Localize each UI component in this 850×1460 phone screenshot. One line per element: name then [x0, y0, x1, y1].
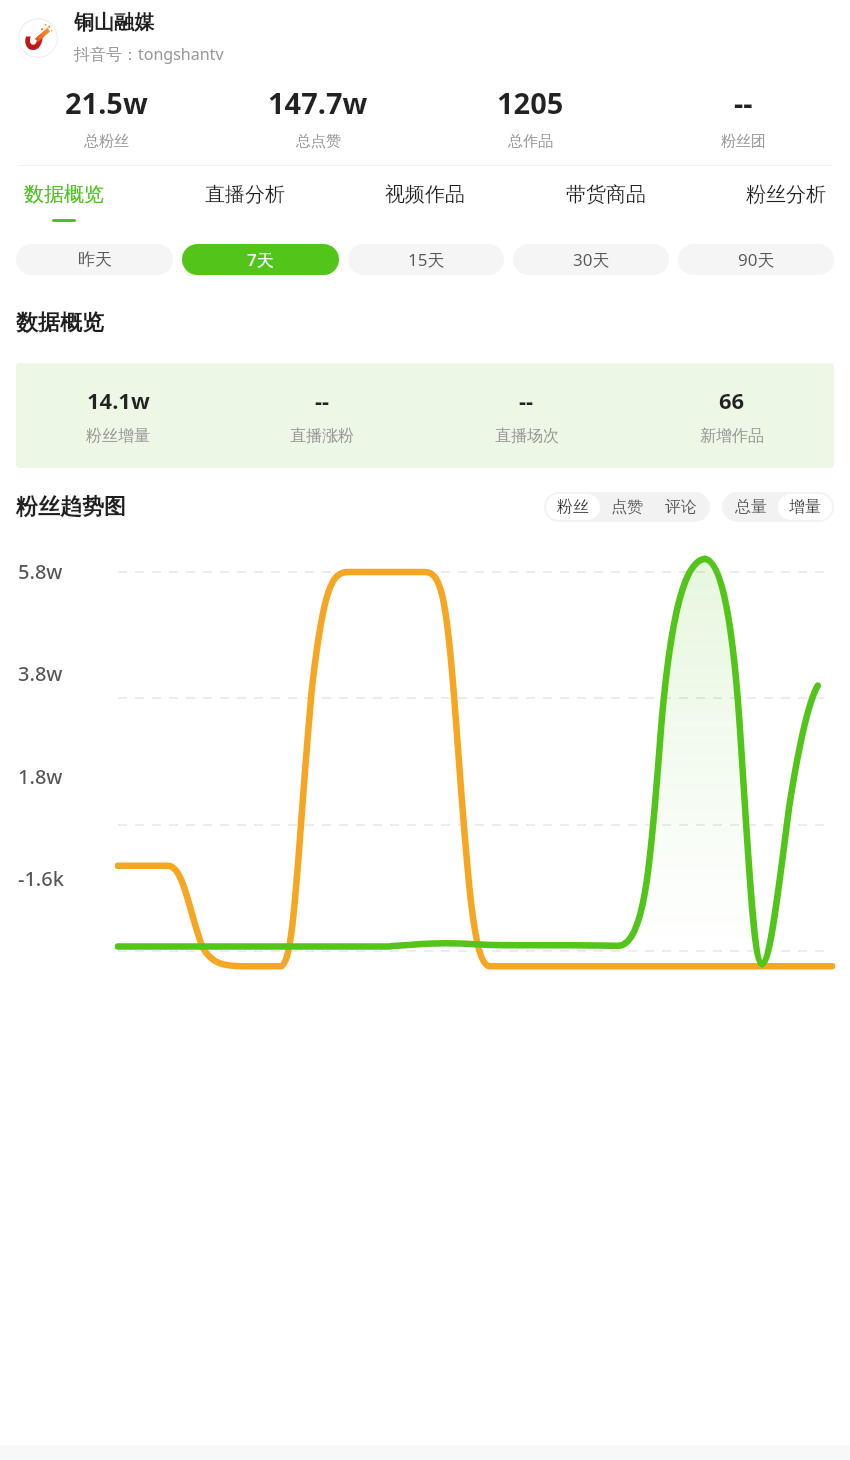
button[interactable]: 铜山融媒 [18, 10, 832, 65]
button[interactable]: -- [637, 83, 850, 151]
button[interactable]: 评论 [654, 494, 708, 520]
button[interactable]: 14.1w [16, 385, 220, 446]
staticText: 直播分析 [205, 182, 285, 207]
button[interactable]: 视频作品 [385, 182, 465, 222]
staticText: 直播涨粉 [290, 426, 354, 446]
staticText: 粉丝 [557, 497, 589, 517]
button[interactable]: -- [220, 385, 424, 446]
staticText: 粉丝趋势图 [16, 493, 126, 521]
button[interactable]: 粉丝 [546, 494, 600, 520]
staticText: 铜山融媒 [74, 10, 154, 35]
staticText: -- [734, 83, 753, 122]
staticText: -- [315, 385, 330, 415]
button[interactable]: 21.5w [0, 83, 212, 151]
staticText: 90天 [738, 248, 775, 271]
button[interactable]: 147.7w [212, 83, 424, 151]
button[interactable]: 数据概览 [24, 182, 104, 222]
staticText: 1205 [497, 83, 564, 122]
staticText: 带货商品 [566, 182, 646, 207]
staticText: 总粉丝 [84, 132, 129, 151]
staticText: 3.8w [18, 660, 63, 687]
staticText: 总量 [735, 497, 767, 517]
staticText: 直播场次 [495, 426, 559, 446]
staticText: 总作品 [508, 132, 553, 151]
button[interactable]: 1205 [424, 83, 637, 151]
staticText: 14.1w [87, 385, 150, 415]
button[interactable]: 粉丝分析 [746, 182, 826, 222]
staticText: 新增作品 [700, 426, 764, 446]
staticText: 增量 [789, 497, 821, 517]
staticText: 30天 [573, 248, 610, 271]
staticText: 7天 [247, 248, 274, 271]
staticText: 21.5w [65, 83, 148, 122]
staticText: 昨天 [78, 249, 112, 270]
button[interactable]: 66 [629, 385, 834, 446]
staticText: 66 [719, 385, 745, 415]
staticText: 粉丝增量 [86, 426, 150, 446]
staticText: 评论 [665, 497, 697, 517]
staticText: 视频作品 [385, 182, 465, 207]
button[interactable]: 7天 [182, 244, 339, 275]
button[interactable]: 90天 [678, 244, 834, 275]
staticText: -1.6k [18, 865, 64, 892]
staticText: 抖音号：tongshantv [74, 43, 224, 65]
button[interactable]: 15天 [348, 244, 504, 275]
button[interactable]: 昨天 [16, 244, 173, 275]
staticText: 1.8w [18, 763, 63, 790]
staticText: 5.8w [18, 558, 63, 585]
staticText: 粉丝分析 [746, 182, 826, 207]
button[interactable]: 增量 [778, 494, 832, 520]
staticText: 数据概览 [16, 309, 104, 337]
staticText: 15天 [408, 248, 445, 271]
staticText: 147.7w [268, 83, 368, 122]
staticText: 点赞 [611, 497, 643, 517]
staticText: -- [519, 385, 534, 415]
button[interactable]: -- [424, 385, 629, 446]
button[interactable]: 点赞 [600, 494, 654, 520]
staticText: 粉丝团 [721, 132, 766, 151]
button[interactable]: 直播分析 [205, 182, 285, 222]
staticText: 总点赞 [296, 132, 341, 151]
button[interactable]: 30天 [513, 244, 669, 275]
button[interactable]: 带货商品 [566, 182, 646, 222]
staticText: 数据概览 [24, 182, 104, 207]
button[interactable]: 总量 [724, 494, 778, 520]
